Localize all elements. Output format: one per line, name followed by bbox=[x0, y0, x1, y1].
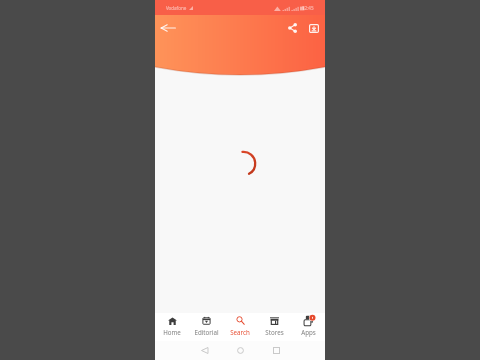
staticText: Vodafone bbox=[166, 5, 187, 11]
staticText: Apps bbox=[301, 328, 316, 336]
button[interactable]: Home bbox=[155, 313, 189, 341]
staticText: 12:45 bbox=[302, 5, 314, 11]
button[interactable]: Back bbox=[156, 16, 180, 40]
button[interactable]: Download bbox=[304, 18, 324, 38]
button[interactable]: Home bbox=[222, 341, 258, 360]
button[interactable]: Stores bbox=[257, 313, 291, 341]
button[interactable]: Recents bbox=[258, 341, 294, 360]
button[interactable]: Share bbox=[282, 18, 302, 38]
button[interactable]: Apps bbox=[291, 313, 325, 341]
button[interactable]: Search bbox=[223, 313, 257, 341]
staticText: Stores bbox=[265, 328, 284, 336]
staticText: Home bbox=[163, 328, 181, 336]
button[interactable]: Back bbox=[186, 341, 222, 360]
staticText: Editorial bbox=[194, 328, 219, 336]
staticText: Search bbox=[230, 328, 250, 336]
button[interactable]: Editorial bbox=[189, 313, 223, 341]
